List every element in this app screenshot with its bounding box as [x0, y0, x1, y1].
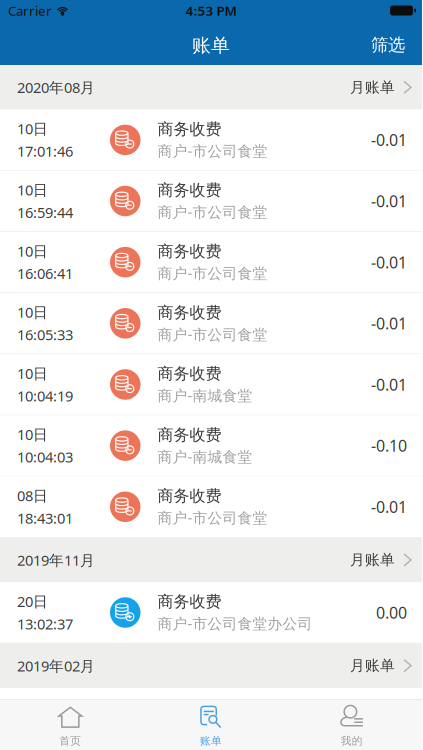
staticText: 商户-市公司食堂 — [157, 263, 267, 283]
staticText: 商务收费 — [157, 364, 221, 384]
staticText: 13:02:37 — [17, 614, 73, 633]
staticText: -0.01 — [371, 190, 407, 212]
button[interactable]: 10日 — [0, 171, 422, 232]
staticText: 商务收费 — [157, 303, 221, 322]
staticText: 商户-市公司食堂 — [157, 324, 267, 344]
button[interactable]: 10日 — [0, 232, 422, 293]
button[interactable]: 2020年08月 — [0, 65, 422, 110]
button[interactable]: 2019年11月 — [0, 538, 422, 582]
staticText: 月账单 — [350, 551, 395, 569]
staticText: 10日 — [17, 425, 48, 444]
staticText: 10:04:19 — [17, 386, 73, 405]
staticText: 08日 — [17, 486, 48, 505]
staticText: 10日 — [17, 363, 48, 383]
staticText: 月账单 — [350, 78, 395, 96]
staticText: -0.01 — [371, 496, 407, 517]
button[interactable]: 10日 — [0, 415, 422, 476]
staticText: 4:53 PM — [185, 2, 236, 19]
staticText: 商户-南城食堂 — [157, 447, 252, 466]
button[interactable]: 我的 — [281, 700, 422, 750]
staticText: 2019年02月 — [17, 656, 95, 675]
staticText: 商务收费 — [157, 425, 221, 445]
button[interactable]: 2019年02月 — [0, 643, 422, 688]
staticText: 商户-市公司食堂办公司 — [157, 614, 312, 633]
staticText: 商务收费 — [157, 486, 221, 506]
button[interactable]: 10日 — [0, 354, 422, 415]
button[interactable]: 08日 — [0, 476, 422, 538]
button[interactable]: 20日 — [0, 582, 422, 643]
button[interactable]: 筛选 — [354, 21, 422, 65]
staticText: 月账单 — [350, 657, 395, 675]
staticText: 账单 — [192, 34, 230, 57]
staticText: 10日 — [17, 241, 48, 261]
staticText: 商户-市公司食堂 — [157, 202, 267, 222]
staticText: -0.10 — [371, 435, 407, 456]
staticText: -0.01 — [371, 374, 407, 395]
staticText: 首页 — [59, 734, 81, 747]
staticText: 10日 — [17, 302, 48, 322]
staticText: 18:43:01 — [17, 508, 73, 528]
staticText: 商务收费 — [157, 242, 221, 261]
staticText: 10日 — [17, 119, 48, 138]
staticText: 商户-南城食堂 — [157, 386, 252, 405]
button[interactable]: 账单 — [141, 700, 281, 750]
staticText: Carrier — [8, 2, 52, 19]
staticText: 17:01:46 — [17, 141, 73, 161]
staticText: 商户-市公司食堂 — [157, 508, 267, 527]
staticText: 我的 — [341, 734, 363, 747]
button[interactable]: 10日 — [0, 110, 422, 171]
staticText: 2020年08月 — [17, 78, 95, 97]
button[interactable]: 首页 — [0, 700, 141, 750]
staticText: -0.01 — [371, 252, 407, 273]
staticText: 2019年11月 — [17, 550, 95, 570]
button[interactable]: 10日 — [0, 293, 422, 354]
staticText: 商户-市公司食堂 — [157, 141, 267, 160]
staticText: 0.00 — [376, 602, 407, 623]
staticText: 16:59:44 — [17, 202, 73, 222]
staticText: -0.01 — [371, 129, 407, 150]
staticText: 10:04:03 — [17, 447, 73, 467]
staticText: 账单 — [200, 734, 222, 747]
staticText: 10日 — [17, 180, 48, 199]
staticText: 16:06:41 — [17, 264, 73, 283]
staticText: 筛选 — [371, 34, 405, 56]
staticText: 商务收费 — [157, 180, 221, 200]
staticText: 商务收费 — [157, 119, 221, 139]
staticText: 20日 — [17, 591, 48, 611]
staticText: 16:05:33 — [17, 325, 73, 344]
staticText: -0.01 — [371, 313, 407, 334]
staticText: 商务收费 — [157, 592, 221, 612]
